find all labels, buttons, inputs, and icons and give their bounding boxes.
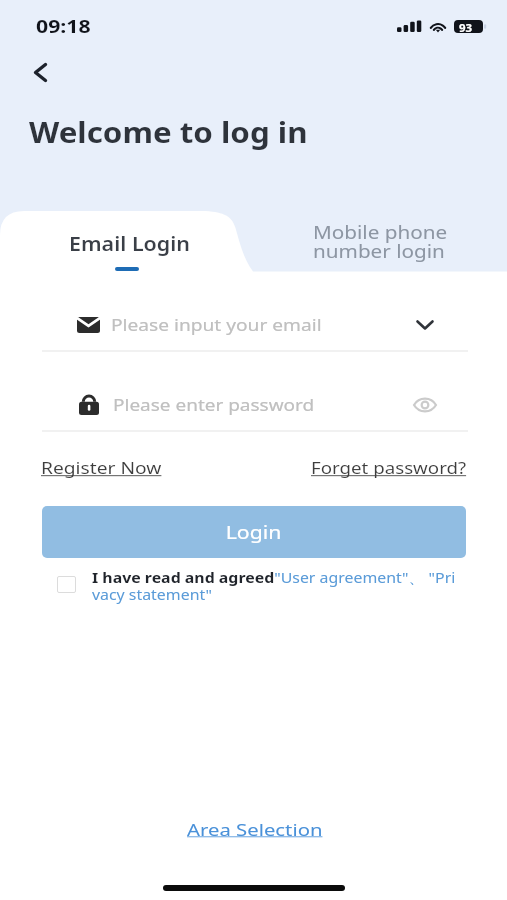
staticText: 09:18 [36, 15, 91, 38]
button[interactable]: Please input your email [42, 300, 468, 350]
button[interactable]: Show email list [409, 309, 441, 341]
button[interactable]: I have read and agreed"User agreement"、 … [92, 568, 456, 604]
button[interactable]: Register Now [0, 0, 107, 23]
button[interactable]: Login [42, 506, 466, 558]
button[interactable]: Back [22, 56, 58, 88]
button[interactable]: Mobile phone number login [0, 0, 119, 44]
staticText: Login [226, 520, 282, 545]
button[interactable]: Please enter password [42, 380, 468, 430]
staticText: 93 [459, 21, 473, 35]
button[interactable]: Forget password? [0, 0, 141, 23]
button[interactable]: Area Selection [0, 0, 111, 22]
staticText: Please enter password [113, 393, 314, 415]
button[interactable]: Agree to terms [57, 576, 76, 593]
button[interactable]: Email Login [0, 0, 108, 26]
staticText: Please input your email [111, 313, 322, 335]
staticText: Welcome to log in [29, 113, 308, 151]
button[interactable]: Show password [409, 389, 441, 421]
